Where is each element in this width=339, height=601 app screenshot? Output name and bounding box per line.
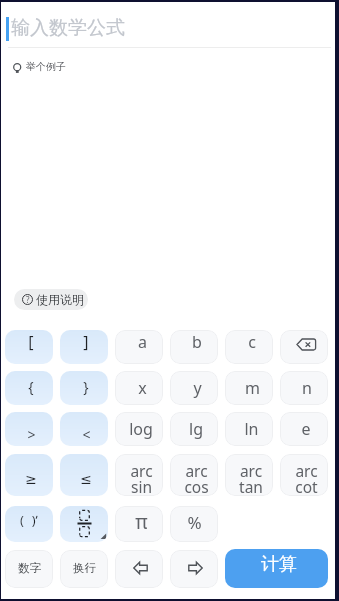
button[interactable]: > [5, 412, 53, 446]
button[interactable]: lg [170, 412, 218, 446]
button[interactable]: 数字 [5, 550, 53, 588]
button[interactable]: < [60, 412, 108, 446]
button[interactable] [280, 330, 328, 364]
staticText: b [192, 331, 202, 353]
button[interactable]: ≥ [5, 454, 53, 496]
staticText: 使用说明 [36, 292, 84, 307]
button[interactable]: 换行 [60, 550, 108, 588]
button[interactable] [115, 550, 163, 588]
button[interactable] [170, 550, 218, 588]
button[interactable]: a [115, 330, 163, 364]
staticText: arc sin [130, 460, 153, 496]
staticText: [ [28, 331, 34, 353]
staticText: 计算 [261, 553, 297, 576]
button[interactable]: arc tan [225, 454, 273, 496]
staticText: lg [189, 418, 203, 440]
button[interactable]: ( )ʹ [5, 506, 53, 542]
button[interactable]: x [115, 371, 163, 405]
button[interactable]: [ [5, 330, 53, 364]
button[interactable]: % [170, 506, 218, 542]
button[interactable]: arc cot [280, 454, 328, 496]
button[interactable]: b [170, 330, 218, 364]
button[interactable]: ? [14, 289, 88, 310]
button[interactable] [60, 506, 108, 542]
button[interactable]: { [5, 371, 53, 405]
button[interactable]: arc cos [170, 454, 218, 496]
button[interactable]: π [115, 506, 163, 542]
staticText: 换行 [73, 561, 96, 575]
button[interactable]: n [280, 371, 328, 405]
button[interactable]: y [170, 371, 218, 405]
button[interactable]: log [115, 412, 163, 446]
staticText: ≤ [80, 471, 92, 487]
button[interactable]: ≤ [60, 454, 108, 496]
button[interactable]: e [280, 412, 328, 446]
staticText: n [302, 377, 312, 399]
button[interactable] [1, 2, 335, 47]
button[interactable] [11, 57, 71, 75]
button[interactable]: arc sin [115, 454, 163, 496]
staticText: 举个例子 [26, 60, 66, 73]
staticText: π [135, 509, 148, 535]
staticText: ln [244, 418, 259, 440]
button[interactable]: 计算 [225, 549, 328, 588]
staticText: c [248, 331, 256, 353]
staticText: ? [26, 294, 30, 305]
staticText: > [27, 425, 36, 444]
staticText: log [129, 418, 153, 440]
staticText: ] [83, 331, 89, 353]
staticText: arc tan [239, 460, 263, 496]
button[interactable]: } [60, 371, 108, 405]
staticText: } [83, 377, 89, 396]
staticText: x [138, 377, 147, 399]
staticText: 数字 [18, 561, 41, 575]
button[interactable]: ] [60, 330, 108, 364]
button[interactable]: ln [225, 412, 273, 446]
button[interactable]: m [225, 371, 273, 405]
staticText: a [138, 331, 147, 353]
staticText: ≥ [25, 471, 37, 487]
staticText: arc cot [295, 460, 318, 496]
staticText: e [301, 418, 311, 440]
staticText: 输入数学公式 [11, 16, 125, 40]
staticText: m [245, 377, 260, 399]
staticText: arc cos [184, 460, 209, 496]
button[interactable]: c [225, 330, 273, 364]
staticText: % [187, 511, 202, 534]
staticText: ( )ʹ [20, 511, 38, 529]
staticText: < [82, 425, 91, 444]
staticText: { [28, 377, 34, 396]
staticText: y [193, 377, 202, 399]
